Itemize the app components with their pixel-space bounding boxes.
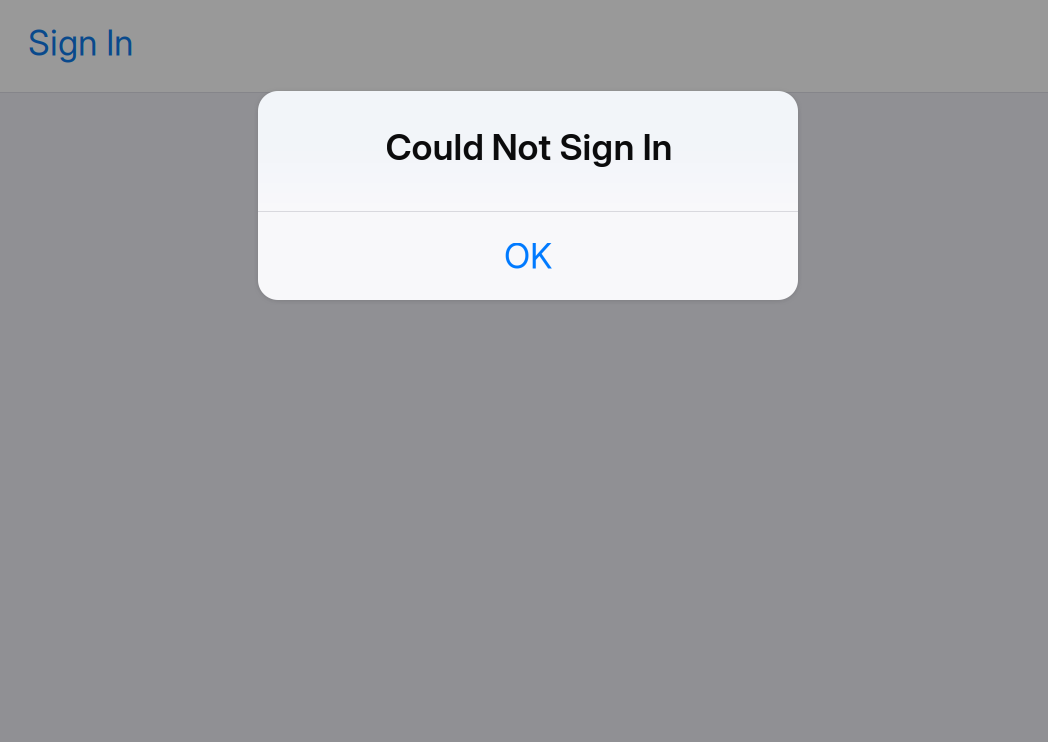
button[interactable]: Sign In bbox=[0, 0, 147, 92]
staticText: OK bbox=[504, 235, 552, 277]
staticText: Sign In bbox=[28, 22, 133, 64]
staticText: Could Not Sign In bbox=[385, 125, 672, 169]
button[interactable]: OK bbox=[258, 212, 798, 300]
